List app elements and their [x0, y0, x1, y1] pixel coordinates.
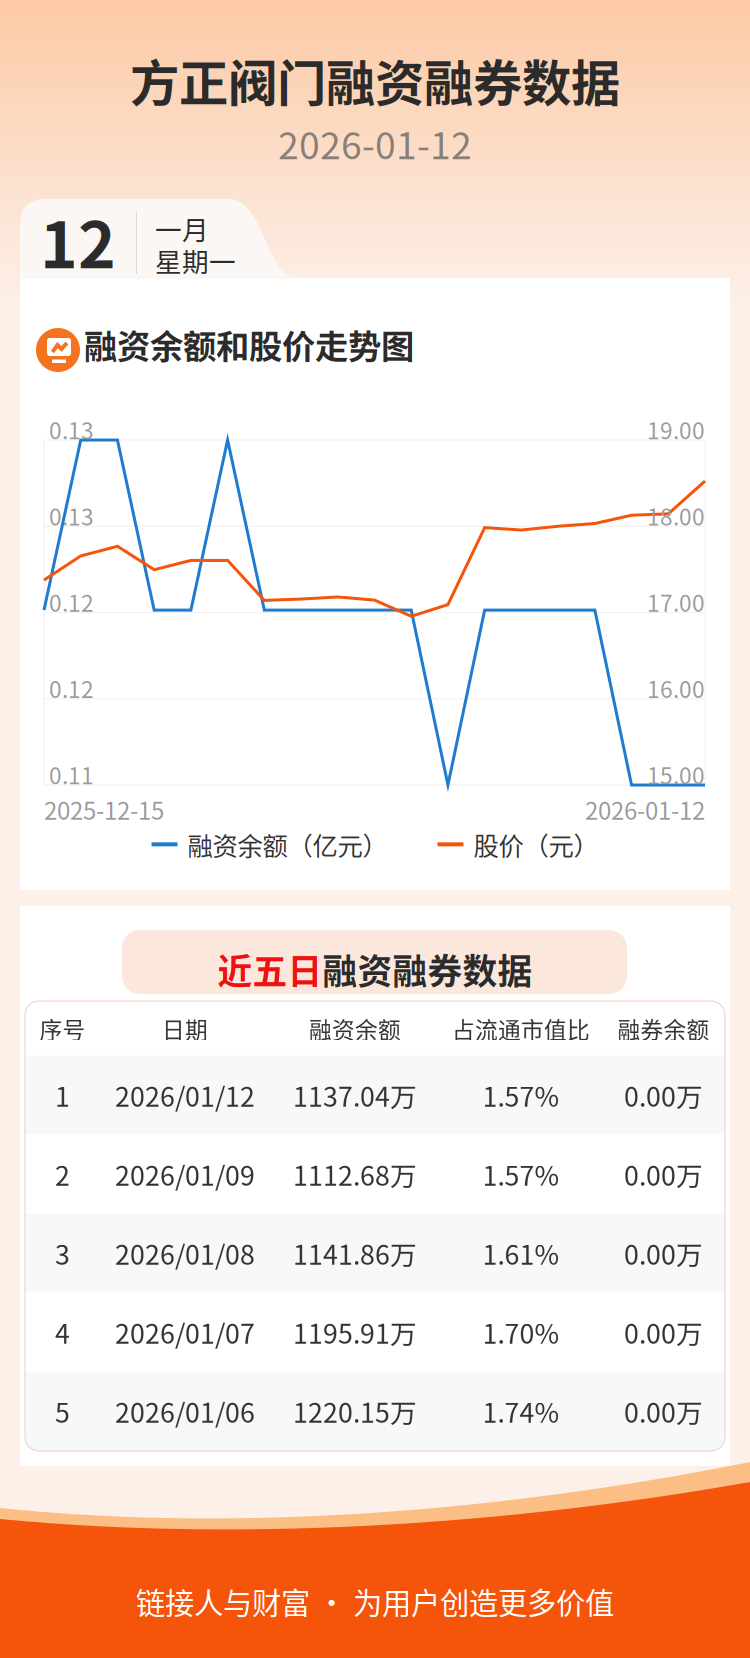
staticText: 0.00万 — [624, 1155, 703, 1193]
staticText: 16.00 — [647, 672, 705, 705]
staticText: 融资余额和股价走势图 — [84, 320, 414, 368]
staticText: 1 — [55, 1076, 70, 1114]
staticText: 0.12 — [49, 672, 94, 705]
staticText: 1137.04万 — [293, 1076, 417, 1114]
staticText: 融资融券数据 — [322, 944, 532, 994]
staticText: 4 — [55, 1313, 70, 1351]
staticText: 融资余额（亿元） — [187, 826, 387, 863]
staticText: 近五日 — [217, 944, 322, 994]
staticText: 17.00 — [647, 585, 705, 618]
staticText: 0.00万 — [624, 1076, 703, 1114]
staticText: 序号 — [39, 1012, 85, 1045]
staticText: 2026/01/07 — [115, 1313, 255, 1351]
staticText: 星期一 — [155, 241, 236, 280]
staticText: 2026/01/06 — [115, 1392, 255, 1430]
staticText: 0.13 — [49, 499, 94, 532]
staticText: 占流通市值比 — [452, 1012, 590, 1045]
staticText: 1220.15万 — [293, 1392, 417, 1430]
staticText: 1.57% — [482, 1155, 559, 1193]
staticText: 1.61% — [482, 1234, 559, 1272]
staticText: 融券余额 — [617, 1012, 709, 1045]
staticText: 0.13 — [49, 413, 94, 446]
staticText: 0.00万 — [624, 1313, 703, 1351]
staticText: 2026/01/08 — [115, 1234, 255, 1272]
staticText: 链接人与财富 · 为用户创造更多价值 — [136, 1580, 614, 1622]
staticText: 3 — [55, 1234, 70, 1272]
staticText: 5 — [55, 1392, 70, 1430]
staticText: 1.70% — [482, 1313, 559, 1351]
staticText: 2026/01/12 — [115, 1076, 255, 1114]
staticText: 0.00万 — [624, 1234, 703, 1272]
staticText: 0.12 — [49, 585, 94, 618]
staticText: 0.00万 — [624, 1392, 703, 1430]
staticText: 1.57% — [482, 1076, 559, 1114]
staticText: 12 — [40, 194, 116, 287]
staticText: 2026/01/09 — [115, 1155, 255, 1193]
staticText: 股价（元） — [473, 826, 598, 863]
staticText: 15.00 — [647, 758, 705, 791]
staticText: 2026-01-12 — [278, 116, 472, 170]
staticText: 2 — [55, 1155, 70, 1193]
staticText: 日期 — [162, 1012, 208, 1045]
staticText: 1141.86万 — [293, 1234, 417, 1272]
staticText: 1112.68万 — [293, 1155, 417, 1193]
staticText: 融资余额 — [309, 1012, 401, 1045]
staticText: 1195.91万 — [293, 1313, 417, 1351]
staticText: 2026-01-12 — [585, 792, 705, 827]
staticText: 18.00 — [647, 499, 705, 532]
staticText: 方正阀门融资融券数据 — [130, 44, 620, 115]
staticText: 一月 — [155, 209, 209, 248]
staticText: 19.00 — [647, 413, 705, 446]
staticText: 1.74% — [482, 1392, 559, 1430]
staticText: 0.11 — [49, 758, 94, 791]
staticText: 2025-12-15 — [44, 792, 164, 827]
